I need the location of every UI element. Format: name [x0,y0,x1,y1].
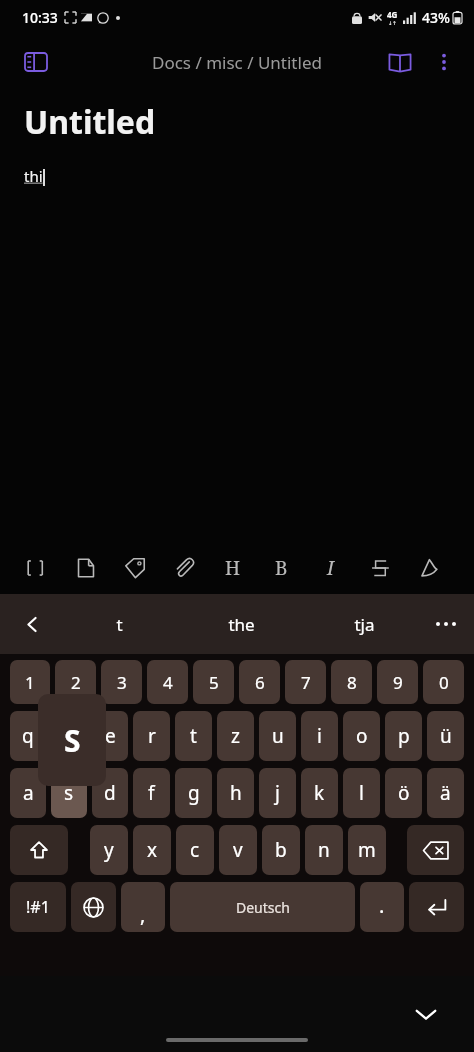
staticText: . [379,892,385,919]
button[interactable]: . [360,882,404,932]
staticText: 7 [301,671,311,694]
button[interactable]: Attach [159,544,208,592]
staticText: !#1 [26,896,50,918]
button[interactable]: 3 [101,660,142,704]
staticText: ↓↑ [388,20,397,26]
staticText: p [398,723,410,749]
staticText: , [140,901,146,928]
button[interactable]: Docs / misc / Untitled [152,51,322,74]
button[interactable]: k [301,768,338,818]
button[interactable]: Previous [8,600,56,648]
button[interactable]: Heading [208,544,257,592]
staticText: 8 [347,671,357,694]
staticText: the [228,613,255,636]
staticText: Docs / misc / Untitled [152,51,322,74]
staticText: Untitled [24,100,156,144]
staticText: 2 [71,671,81,694]
staticText: c [190,837,200,863]
staticText: 43% [422,8,450,27]
staticText: 0 [439,671,449,694]
button[interactable]: , [121,882,165,932]
staticText: x [147,837,158,863]
button[interactable]: t [175,711,212,761]
staticText: s [64,780,74,806]
button[interactable]: Italic [306,544,355,592]
button[interactable]: Insert file [61,544,110,592]
button[interactable]: Change language [71,882,116,932]
button[interactable]: j [259,768,296,818]
button[interactable]: Insert tag [110,544,159,592]
button[interactable]: q [10,711,46,761]
button[interactable]: Insert brackets [12,544,61,592]
button[interactable]: !#1 [10,882,66,932]
button[interactable]: v [219,825,257,875]
staticText: r [148,723,156,749]
button[interactable]: o [343,711,380,761]
button[interactable]: ü [427,711,464,761]
button[interactable]: Bold [257,544,306,592]
staticText: z [231,723,240,749]
button[interactable]: x [133,825,171,875]
button[interactable]: i [301,711,338,761]
button[interactable]: s [51,768,87,818]
button[interactable]: 7 [285,660,326,704]
button[interactable]: the [180,594,303,654]
button[interactable]: 1 [10,660,50,704]
button[interactable]: 5 [193,660,234,704]
button[interactable]: 6 [239,660,280,704]
staticText: e [105,723,116,749]
button[interactable]: e [92,711,128,761]
staticText: 10:33 [22,8,58,27]
button[interactable]: Deutsch [170,882,355,932]
button[interactable]: w [51,711,87,761]
button[interactable]: 9 [377,660,418,704]
button[interactable]: n [305,825,343,875]
button[interactable]: Hide keyboard [404,992,448,1036]
button[interactable]: a [10,768,46,818]
button[interactable]: ä [427,768,464,818]
staticText: a [23,780,34,806]
button[interactable]: 8 [331,660,372,704]
staticText: thi [24,166,43,186]
button[interactable]: More suggestions [424,602,468,646]
button[interactable]: b [262,825,300,875]
button[interactable]: Highlight [404,544,453,592]
staticText: i [317,723,322,749]
button[interactable]: t [58,594,180,654]
button[interactable]: 0 [423,660,464,704]
button[interactable]: ö [385,768,422,818]
button[interactable]: Read mode [378,40,422,84]
staticText: 5 [209,671,219,694]
button[interactable]: m [348,825,386,875]
button[interactable]: tja [303,594,426,654]
button[interactable]: l [343,768,380,818]
button[interactable]: More options [422,40,466,84]
button[interactable]: Toggle sidebar [14,40,58,84]
staticText: ö [398,780,410,806]
staticText: B [275,555,288,581]
staticText: w [62,723,77,749]
staticText: 3 [117,671,127,694]
staticText: ü [440,723,452,749]
button[interactable]: 2 [55,660,96,704]
button[interactable]: z [217,711,254,761]
staticText: m [358,837,376,863]
button[interactable]: Strikethrough [355,544,404,592]
button[interactable]: y [90,825,128,875]
button[interactable]: Backspace [407,825,464,875]
staticText: 1 [25,671,35,694]
button[interactable]: Shift [10,825,68,875]
button[interactable]: r [133,711,170,761]
button[interactable]: p [385,711,422,761]
button[interactable]: Enter [409,882,464,932]
button[interactable]: d [92,768,128,818]
staticText: b [275,837,287,863]
button[interactable]: f [133,768,170,818]
button[interactable]: c [176,825,214,875]
button[interactable]: h [217,768,254,818]
button[interactable]: g [175,768,212,818]
staticText: q [22,723,34,749]
button[interactable]: 4 [147,660,188,704]
staticText: 4G [387,9,398,20]
button[interactable]: u [259,711,296,761]
